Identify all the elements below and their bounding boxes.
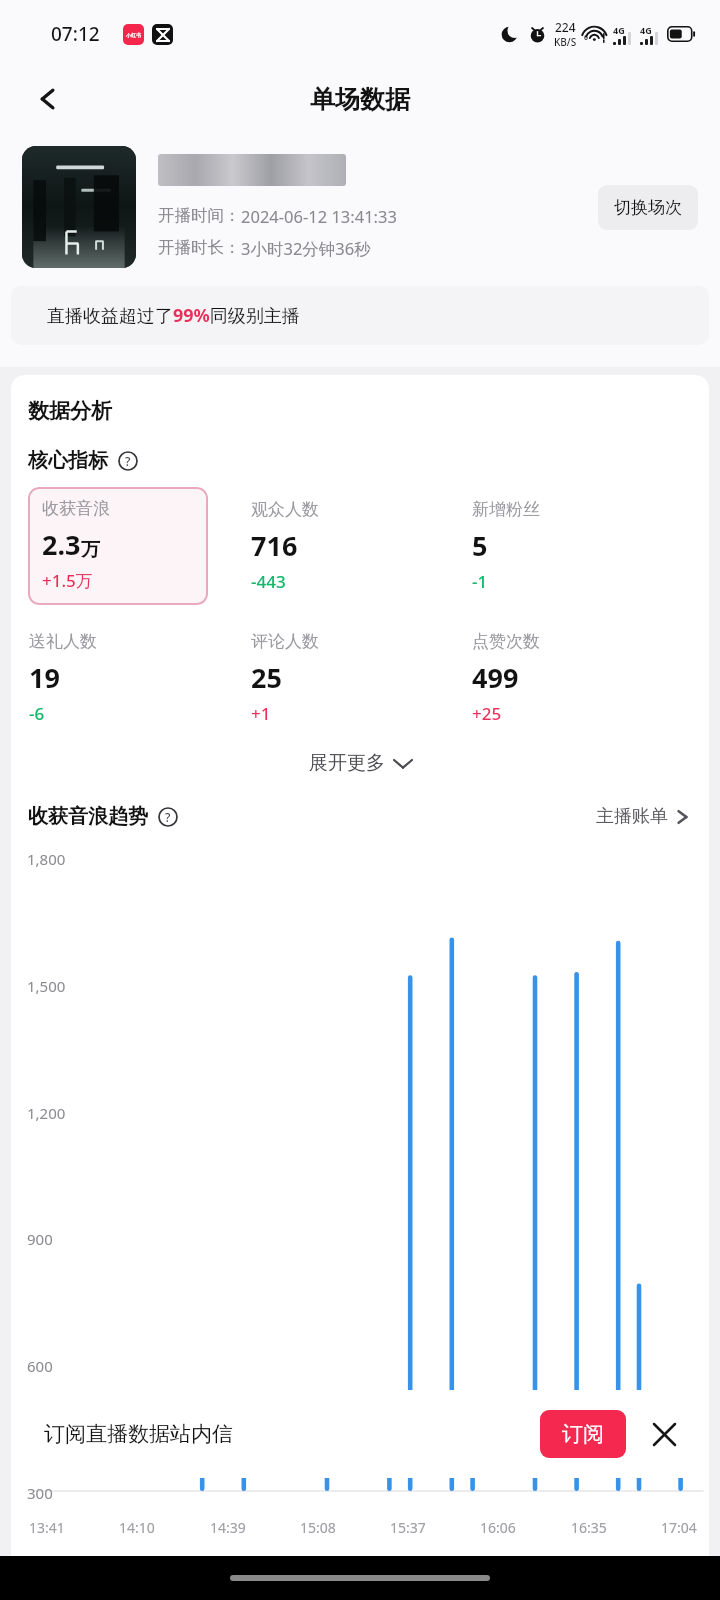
button[interactable]: 点赞次数 xyxy=(471,619,692,739)
button[interactable]: Help xyxy=(116,449,140,473)
staticText: 07:12 xyxy=(51,21,100,47)
button[interactable]: 展开更多 xyxy=(295,743,426,783)
button[interactable]: Back xyxy=(22,73,74,125)
staticText: 3小时32分钟36秒 xyxy=(241,237,371,260)
staticText: 300 xyxy=(27,1483,53,1503)
staticText: +25 xyxy=(472,702,502,725)
staticText: 900 xyxy=(27,1229,53,1249)
staticText: 16:35 xyxy=(571,1518,607,1537)
button[interactable]: 订阅 xyxy=(540,1410,626,1458)
staticText: 切换场次 xyxy=(614,197,682,218)
staticText: 4G xyxy=(613,24,625,36)
staticText: 数据分析 xyxy=(28,398,112,424)
staticText: 15:37 xyxy=(390,1518,426,1537)
staticText: 499 xyxy=(472,659,519,696)
staticText: 收获音浪趋势 xyxy=(28,804,148,829)
button[interactable]: 收获音浪 xyxy=(28,487,208,605)
staticText: 14:10 xyxy=(119,1518,155,1537)
staticText: 716 xyxy=(251,527,298,564)
button[interactable]: 观众人数 xyxy=(250,487,471,607)
staticText: +1.5万 xyxy=(42,569,93,592)
staticText: 观众人数 xyxy=(251,499,319,520)
staticText: 224 xyxy=(555,19,576,35)
staticText: 17:04 xyxy=(661,1518,697,1537)
staticText: 关键节点 xyxy=(271,1565,339,1586)
button[interactable]: 切换场次 xyxy=(598,185,698,230)
staticText: 14:39 xyxy=(210,1518,246,1537)
staticText: 4G xyxy=(640,24,652,36)
button[interactable]: 直播收益超过了99%同级别主播 xyxy=(11,286,709,345)
staticText: 1,800 xyxy=(27,849,66,869)
staticText: 开播时长： xyxy=(158,237,241,258)
staticText: 万 xyxy=(81,538,100,562)
staticText: 19 xyxy=(29,659,60,696)
staticText: 小红书 xyxy=(126,32,141,38)
staticText: 总音浪收入 xyxy=(384,1565,469,1586)
staticText: 送礼人数 xyxy=(29,631,97,652)
staticText: -1 xyxy=(472,570,488,593)
staticText: 主播账单 xyxy=(596,805,668,828)
staticText: ? xyxy=(165,809,171,825)
staticText: 收获音浪 xyxy=(42,498,110,519)
staticText: +1 xyxy=(251,702,271,725)
staticText: 开播时间： xyxy=(158,205,241,226)
button[interactable]: 评论人数 xyxy=(250,619,471,739)
staticText: 订阅 xyxy=(562,1421,604,1447)
button[interactable]: 新增粉丝 xyxy=(471,487,692,607)
staticText: 25 xyxy=(251,659,282,696)
button[interactable]: 主播账单 xyxy=(592,799,692,834)
staticText: 600 xyxy=(27,1356,53,1376)
staticText: 5 xyxy=(472,527,488,564)
button[interactable]: Help xyxy=(156,805,180,829)
staticText: 核心指标 xyxy=(28,448,108,473)
staticText: 点赞次数 xyxy=(472,631,540,652)
button[interactable]: 送礼人数 xyxy=(28,619,250,739)
staticText: KB/S xyxy=(554,35,577,49)
staticText: 单场数据 xyxy=(310,84,410,115)
staticText: 2024-06-12 13:41:33 xyxy=(241,205,397,227)
staticText: 1,200 xyxy=(27,1103,66,1123)
staticText: 1,500 xyxy=(27,976,66,996)
staticText: 新增粉丝 xyxy=(472,499,540,520)
staticText: 直播收益超过了99%同级别主播 xyxy=(47,303,300,328)
staticText: -443 xyxy=(251,570,286,593)
staticText: 15:08 xyxy=(300,1518,336,1537)
staticText: ? xyxy=(125,453,131,469)
staticText: 展开更多 xyxy=(309,751,385,775)
staticText: 6 xyxy=(584,33,589,43)
staticText: 评论人数 xyxy=(251,631,319,652)
staticText: 13:41 xyxy=(29,1518,65,1537)
staticText: 16:06 xyxy=(480,1518,516,1537)
staticText: -6 xyxy=(29,702,45,725)
staticText: 2.3 xyxy=(42,526,81,563)
button[interactable]: Close xyxy=(644,1414,684,1454)
staticText: 订阅直播数据站内信 xyxy=(44,1421,233,1447)
